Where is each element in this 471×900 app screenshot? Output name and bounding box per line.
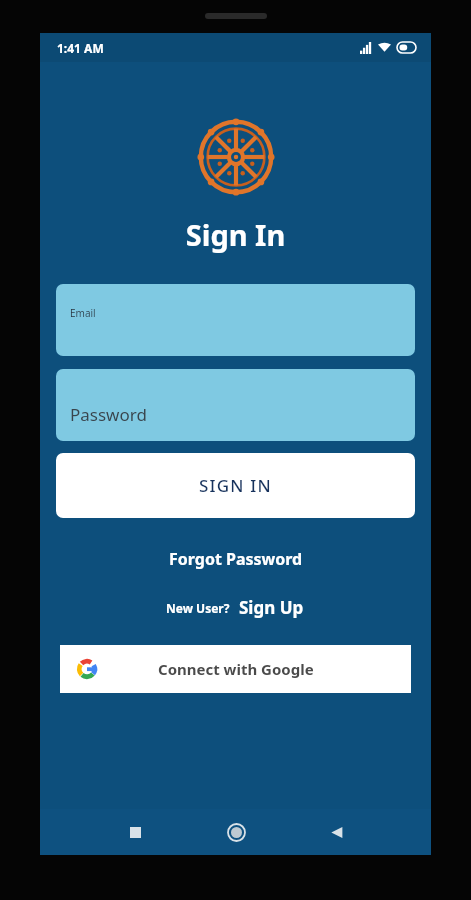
staticText: New User? <box>166 600 230 616</box>
button[interactable]: Email <box>56 284 415 356</box>
button[interactable]: SIGN IN <box>56 453 415 518</box>
staticText: Sign In <box>40 215 431 254</box>
button[interactable]: Back <box>319 815 353 849</box>
button[interactable]: Home <box>219 815 253 849</box>
button[interactable]: Recent apps <box>118 815 152 849</box>
button[interactable]: Password <box>56 369 415 441</box>
staticText: Password <box>70 403 147 426</box>
staticText: Forgot Password <box>169 548 303 570</box>
staticText: Sign Up <box>239 596 304 619</box>
staticText: Email <box>70 306 96 320</box>
staticText: Connect with Google <box>158 659 314 679</box>
button[interactable]: Forgot Password <box>161 545 311 573</box>
button[interactable]: Sign Up <box>237 594 306 621</box>
staticText: 1:41 AM <box>57 40 104 56</box>
button[interactable]: Connect with Google <box>60 645 411 693</box>
staticText: SIGN IN <box>199 474 272 497</box>
